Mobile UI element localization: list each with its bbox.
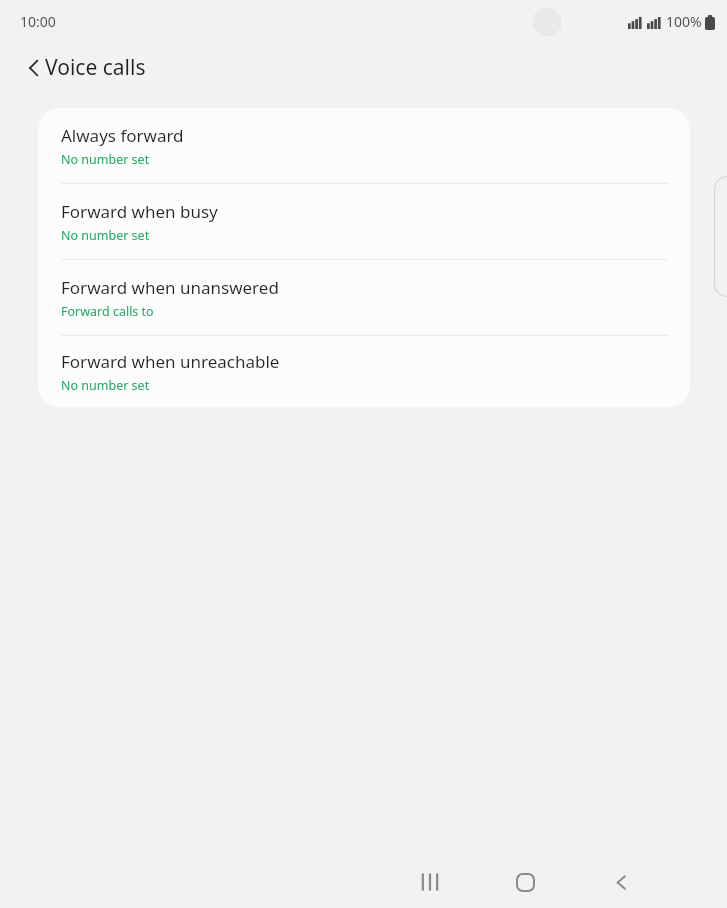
staticText: No number set [61, 151, 150, 168]
staticText: Forward when busy [61, 200, 218, 223]
staticText: 100% [666, 12, 702, 31]
button[interactable]: Always forward [38, 108, 690, 183]
staticText: Forward when unanswered [61, 276, 279, 299]
button[interactable]: Recent apps [404, 856, 456, 908]
button[interactable]: Back [16, 50, 52, 86]
staticText: Forward calls to [61, 303, 154, 320]
staticText: Forward when unreachable [61, 350, 280, 373]
staticText: No number set [61, 227, 150, 244]
button[interactable]: Home [499, 856, 551, 908]
staticText: Voice calls [45, 53, 146, 82]
button[interactable]: Forward when unanswered [38, 260, 690, 335]
button[interactable]: Edge panel handle [714, 176, 727, 297]
staticText: Always forward [61, 124, 184, 147]
staticText: No number set [61, 377, 150, 394]
staticText: 10:00 [20, 12, 56, 31]
button[interactable]: Forward when busy [38, 184, 690, 259]
button[interactable]: Forward when unreachable [38, 336, 690, 407]
button[interactable]: Back [595, 856, 647, 908]
